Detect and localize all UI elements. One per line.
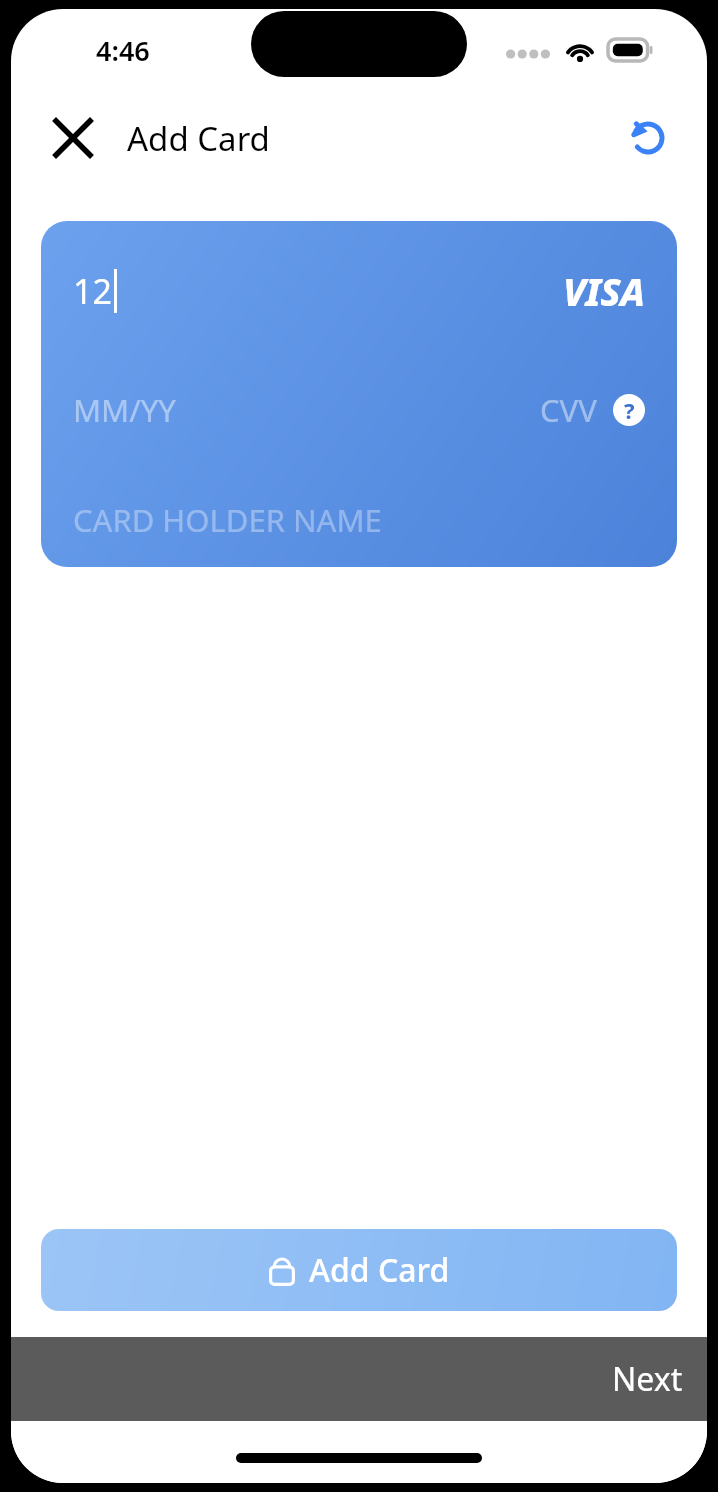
button[interactable]: Close [41, 106, 105, 170]
button[interactable]: Reset [617, 107, 679, 169]
button[interactable]: CARD HOLDER NAME [73, 499, 382, 541]
button[interactable]: What is CVV? [613, 394, 645, 426]
button[interactable]: CVV [540, 389, 597, 431]
staticText: Add Card [309, 1248, 450, 1292]
staticText: Add Card [127, 116, 270, 161]
staticText: 4:46 [96, 32, 150, 69]
button[interactable]: 12 [41, 221, 677, 567]
button[interactable]: Add Card [41, 1229, 677, 1311]
button[interactable]: MM/YY [73, 389, 176, 431]
staticText: 12 [73, 268, 112, 314]
staticText: VISA [563, 265, 645, 317]
button[interactable]: Next [612, 1357, 683, 1401]
staticText: ? [624, 395, 635, 425]
